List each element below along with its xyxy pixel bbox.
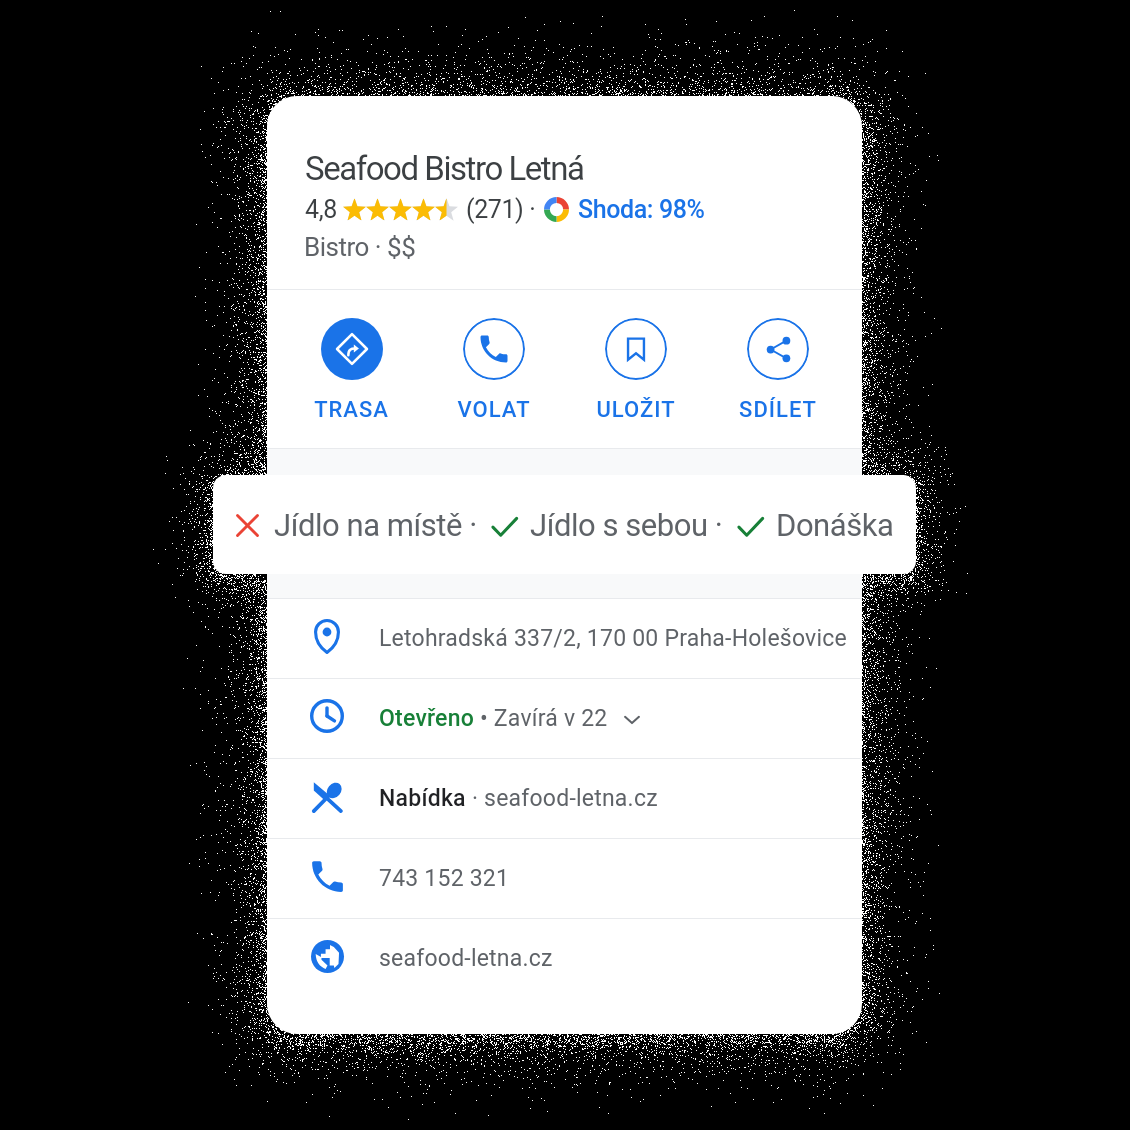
staticText: VOLAT — [457, 397, 531, 423]
button[interactable]: Share — [707, 290, 849, 448]
staticText: Donáška — [776, 507, 894, 543]
button[interactable]: Otevřeno — [267, 679, 862, 758]
staticText: Nabídka — [379, 785, 466, 812]
button[interactable]: Jídlo na místě · — [213, 475, 916, 574]
other: Directions — [335, 332, 369, 366]
button[interactable]: Nabídka — [267, 759, 862, 838]
button[interactable]: Save — [565, 290, 707, 448]
button[interactable]: Letohradská 337/2, 170 00 Praha-Holešovi… — [267, 599, 862, 678]
staticText: seafood-letna.cz — [379, 945, 553, 972]
button[interactable]: Directions — [280, 290, 423, 448]
button[interactable]: seafood-letna.cz — [267, 919, 862, 998]
staticText: TRASA — [314, 397, 389, 423]
staticText: SDÍLET — [739, 397, 817, 423]
staticText: Otevřeno — [379, 705, 474, 732]
button[interactable]: 743 152 321 — [267, 839, 862, 918]
staticText: 4,8 — [305, 195, 337, 224]
button[interactable]: Call — [423, 290, 565, 448]
staticText: Bistro · $$ — [304, 232, 416, 262]
staticText: · seafood-letna.cz — [466, 785, 658, 812]
staticText: Jídlo na místě · — [274, 507, 477, 543]
staticText: • Zavírá v 22 — [474, 705, 620, 732]
staticText: Jídlo s sebou · — [530, 507, 723, 543]
staticText: ULOŽIT — [596, 397, 676, 423]
staticText: Letohradská 337/2, 170 00 Praha-Holešovi… — [379, 625, 847, 652]
other: Share — [763, 334, 794, 365]
staticText: 743 152 321 — [379, 865, 510, 892]
staticText: Seafood Bistro Letná — [305, 149, 584, 188]
other: Save — [621, 334, 651, 364]
staticText: Shoda: 98% — [578, 195, 705, 224]
other: Call — [476, 331, 512, 367]
staticText: (271) · — [466, 195, 536, 224]
